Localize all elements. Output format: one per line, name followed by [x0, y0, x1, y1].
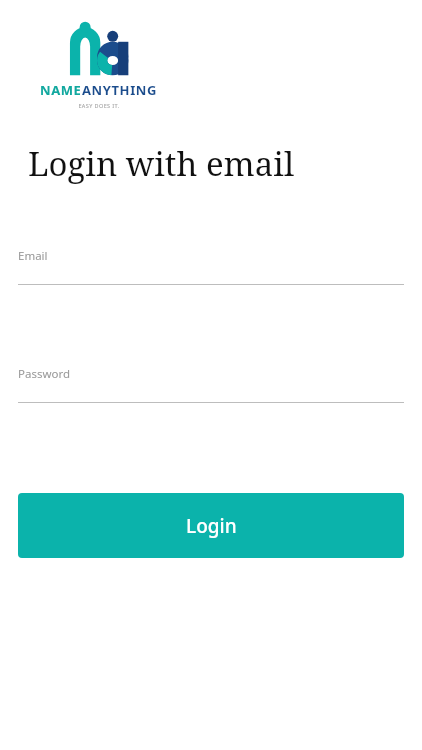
- staticText: Login with email: [28, 141, 295, 186]
- staticText: Password: [18, 366, 71, 382]
- staticText: ANYTHING: [82, 81, 157, 99]
- staticText: NAME: [40, 81, 82, 99]
- staticText: Login: [186, 513, 237, 539]
- staticText: EASY DOES IT.: [78, 102, 120, 109]
- staticText: Email: [18, 248, 48, 264]
- button[interactable]: Login: [18, 493, 404, 558]
